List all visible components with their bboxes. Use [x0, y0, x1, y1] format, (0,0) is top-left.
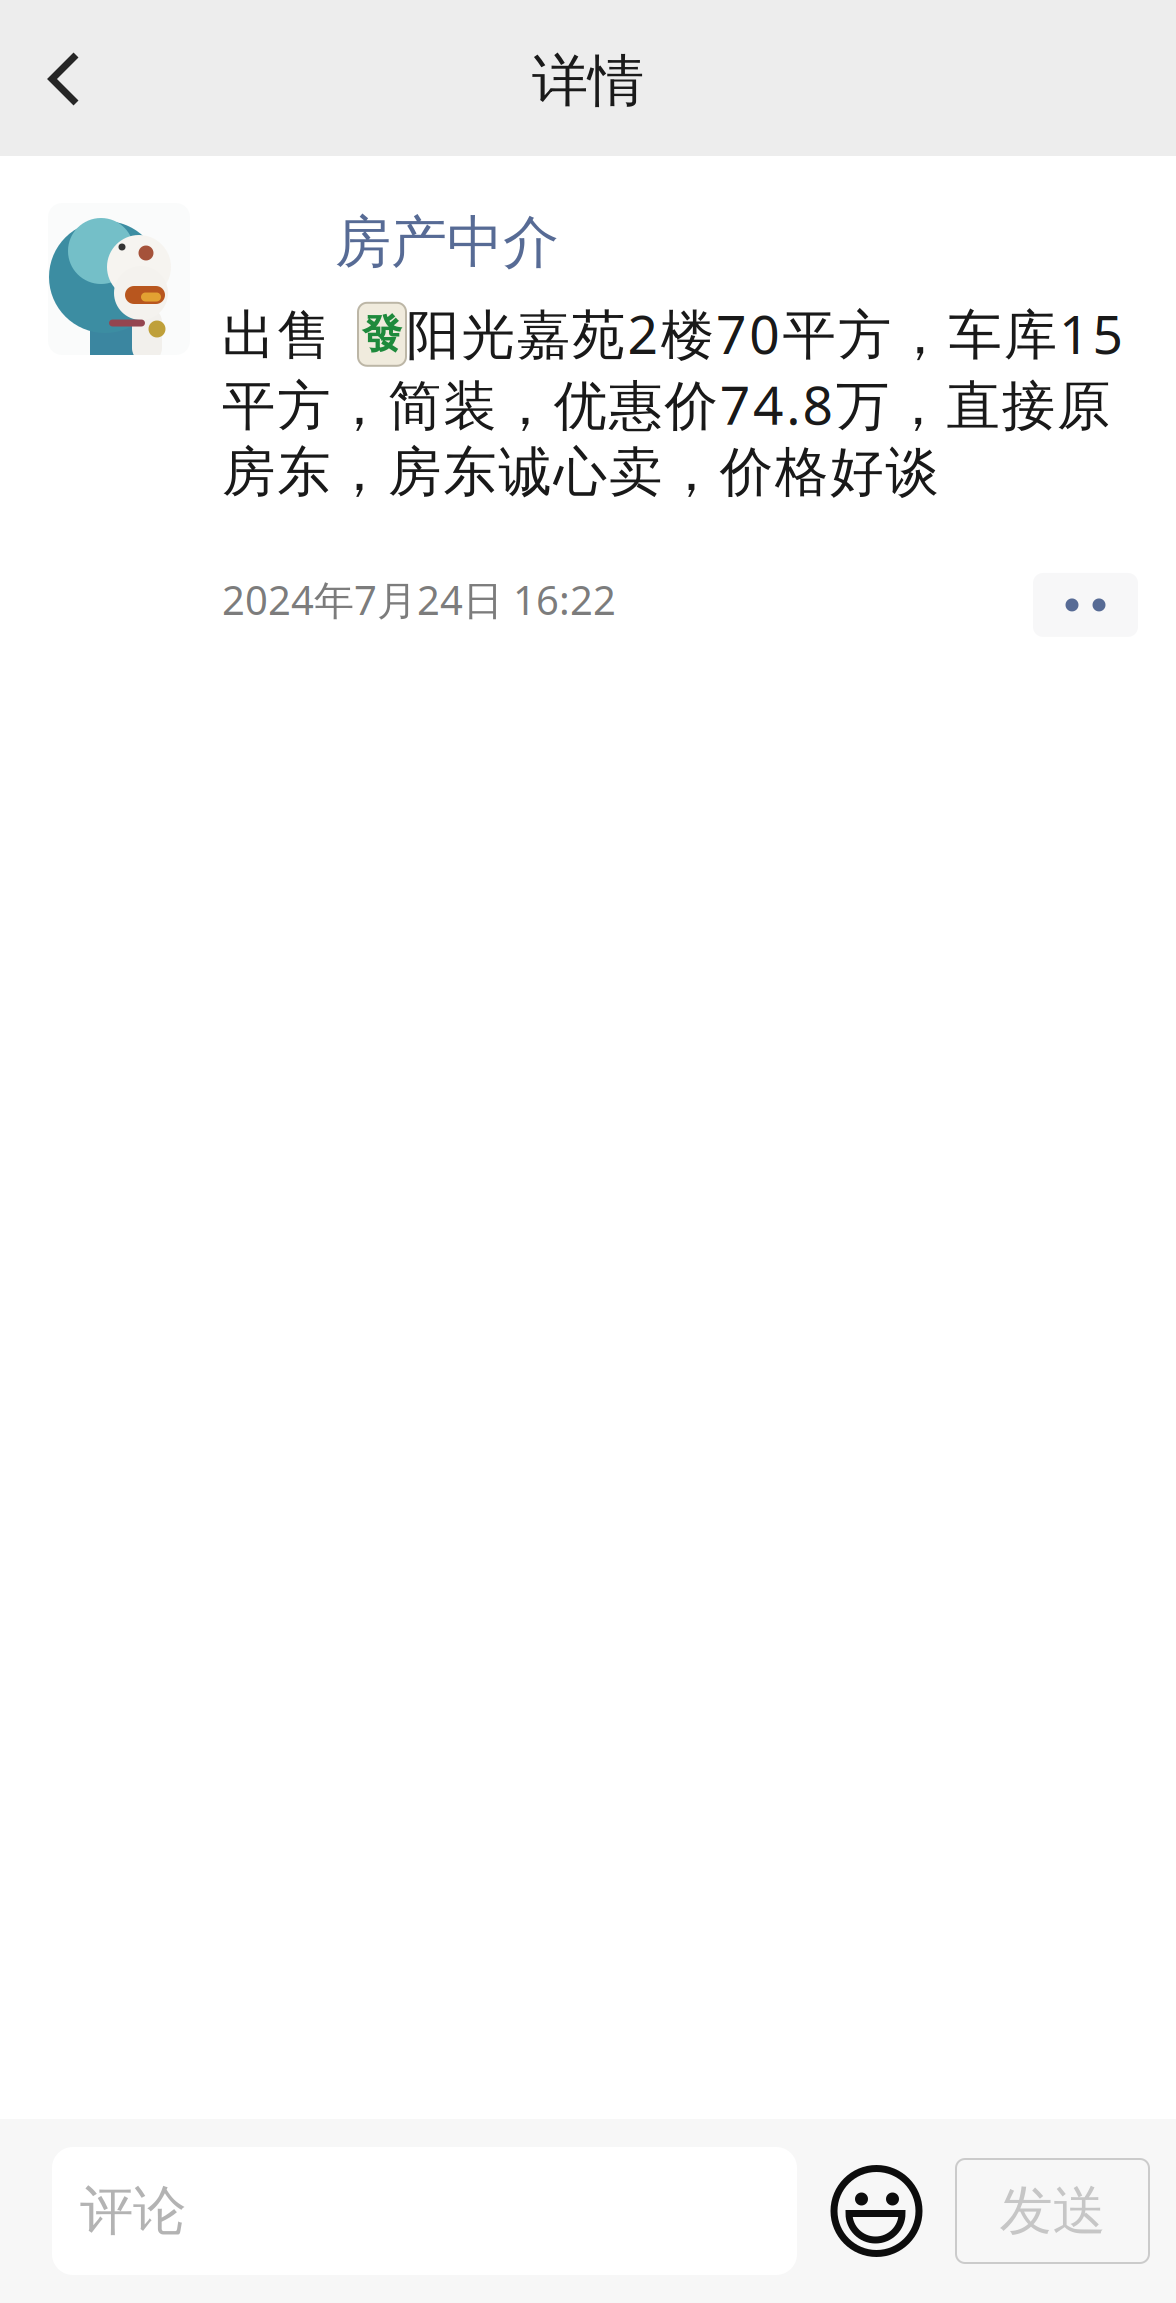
button[interactable]: 发送 [956, 2159, 1149, 2263]
button[interactable]: 评论 [52, 2147, 797, 2275]
staticText: 出售 阳光嘉苑2楼70平方，车库15平方，简装，优惠价74.8万，直接原房东，房… [222, 298, 1123, 505]
button[interactable]: Emoji keyboard [830, 2147, 922, 2275]
button[interactable]: 房产中介 avatar [48, 203, 190, 355]
staticText: 房产中介 [335, 208, 559, 277]
button[interactable]: Back [0, 21, 118, 135]
staticText: 發 [362, 310, 402, 359]
button[interactable]: 房产中介 [222, 203, 1138, 277]
button[interactable]: More actions [1033, 564, 1138, 637]
staticText: 详情 [532, 47, 644, 115]
staticText: 2024年7月24日 16:22 [222, 573, 616, 626]
staticText: 发送 [999, 2178, 1105, 2244]
staticText: 评论 [80, 2178, 186, 2244]
